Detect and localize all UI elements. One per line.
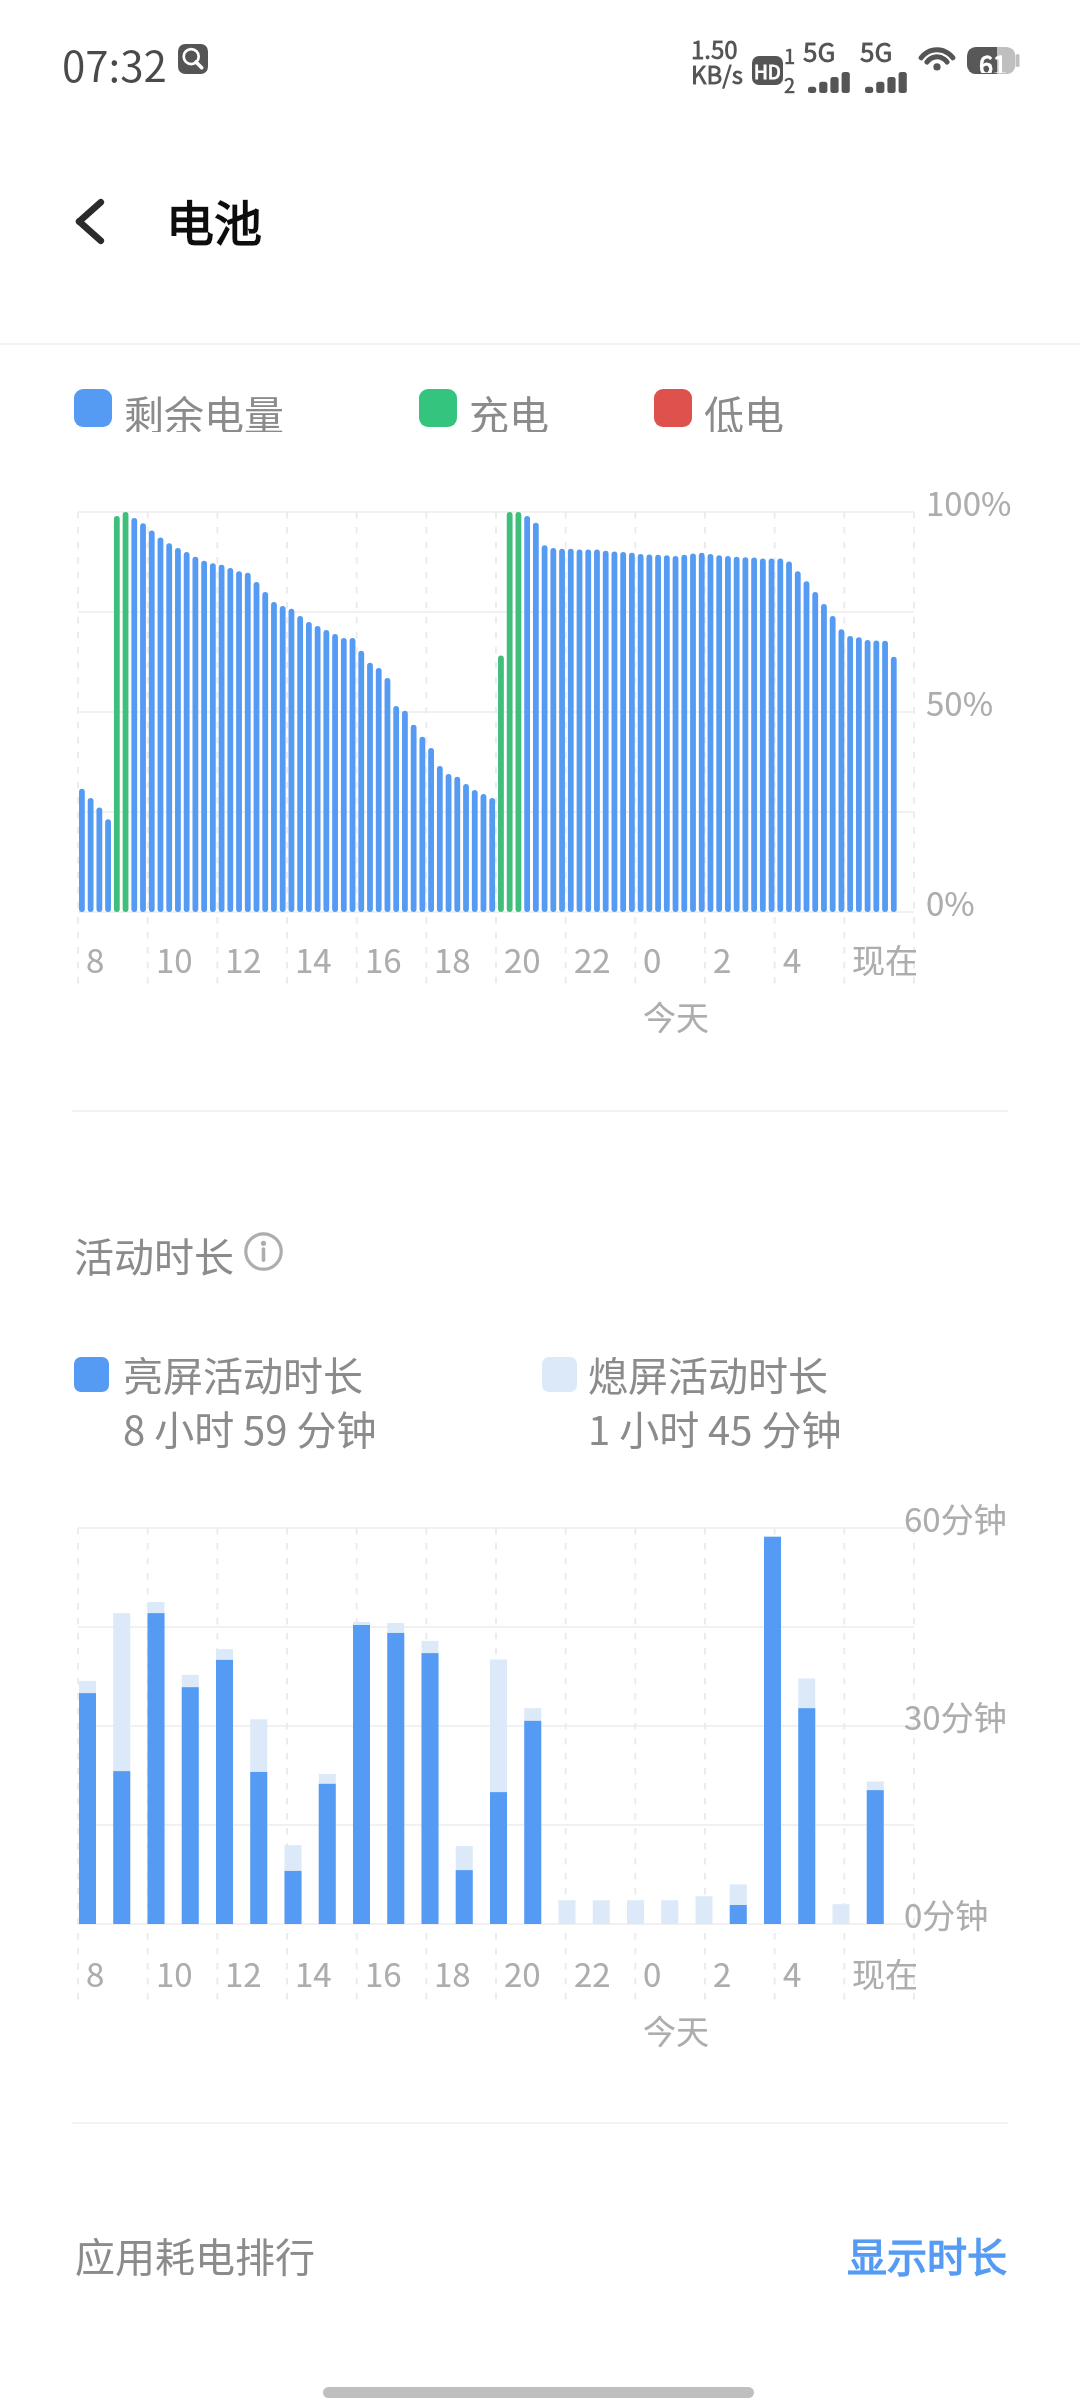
staticText: 14 — [295, 935, 332, 983]
staticText: HD — [754, 57, 781, 85]
staticText: 50% — [926, 678, 994, 726]
staticText: KB/s — [691, 56, 743, 91]
staticText: 显示时长 — [847, 2226, 1007, 2284]
staticText: 0分钟 — [904, 1890, 989, 1938]
staticText: 剩余电量 — [124, 384, 284, 432]
button[interactable]: 低电 — [654, 384, 786, 432]
staticText: 2 — [713, 1949, 732, 1997]
button[interactable]: Info about activity duration — [244, 1232, 283, 1271]
staticText: 4 — [783, 935, 802, 983]
staticText: 61 — [979, 46, 1007, 73]
staticText: 8 — [86, 935, 105, 983]
staticText: 2 — [713, 935, 732, 983]
staticText: 22 — [574, 935, 611, 983]
button[interactable]: 应用耗电排行 — [0, 2196, 1080, 2314]
staticText: 0 — [643, 1949, 662, 1997]
staticText: 4 — [783, 1949, 802, 1997]
staticText: 熄屏活动时长 — [588, 1345, 828, 1403]
staticText: 10 — [156, 935, 193, 983]
staticText: 30分钟 — [904, 1692, 1007, 1740]
staticText: 12 — [225, 935, 262, 983]
staticText: 现在 — [852, 935, 918, 983]
staticText: 8 小时 59 分钟 — [123, 1399, 377, 1457]
staticText: 现在 — [852, 1949, 918, 1997]
staticText: 5G — [860, 32, 893, 70]
staticText: 今天 — [643, 2006, 709, 2054]
staticText: 亮屏活动时长 — [123, 1345, 363, 1403]
button[interactable]: Back — [46, 177, 134, 265]
button[interactable]: 剩余电量 — [74, 384, 288, 432]
button[interactable]: 充电 — [419, 384, 551, 432]
staticText: 8 — [86, 1949, 105, 1997]
staticText: 活动时长 — [74, 1226, 234, 1284]
staticText: 60分钟 — [904, 1494, 1007, 1542]
staticText: 07:32 — [62, 33, 167, 94]
staticText: 16 — [365, 935, 402, 983]
staticText: 充电 — [469, 384, 549, 432]
staticText: 18 — [434, 1949, 471, 1997]
staticText: 20 — [504, 1949, 541, 1997]
staticText: 1 — [784, 41, 796, 70]
staticText: 1 小时 45 分钟 — [588, 1399, 842, 1457]
staticText: 电池 — [166, 185, 263, 255]
staticText: 100% — [926, 478, 1012, 526]
staticText: 应用耗电排行 — [75, 2226, 315, 2284]
staticText: 10 — [156, 1949, 193, 1997]
staticText: 20 — [504, 935, 541, 983]
staticText: 12 — [225, 1949, 262, 1997]
staticText: 1.50 — [691, 31, 738, 66]
staticText: 22 — [574, 1949, 611, 1997]
staticText: 0 — [643, 935, 662, 983]
staticText: 5G — [803, 32, 836, 70]
staticText: 0% — [926, 878, 975, 926]
staticText: 18 — [434, 935, 471, 983]
staticText: 2 — [784, 70, 796, 99]
staticText: 14 — [295, 1949, 332, 1997]
staticText: 16 — [365, 1949, 402, 1997]
staticText: 今天 — [643, 992, 709, 1040]
staticText: 低电 — [704, 384, 784, 432]
